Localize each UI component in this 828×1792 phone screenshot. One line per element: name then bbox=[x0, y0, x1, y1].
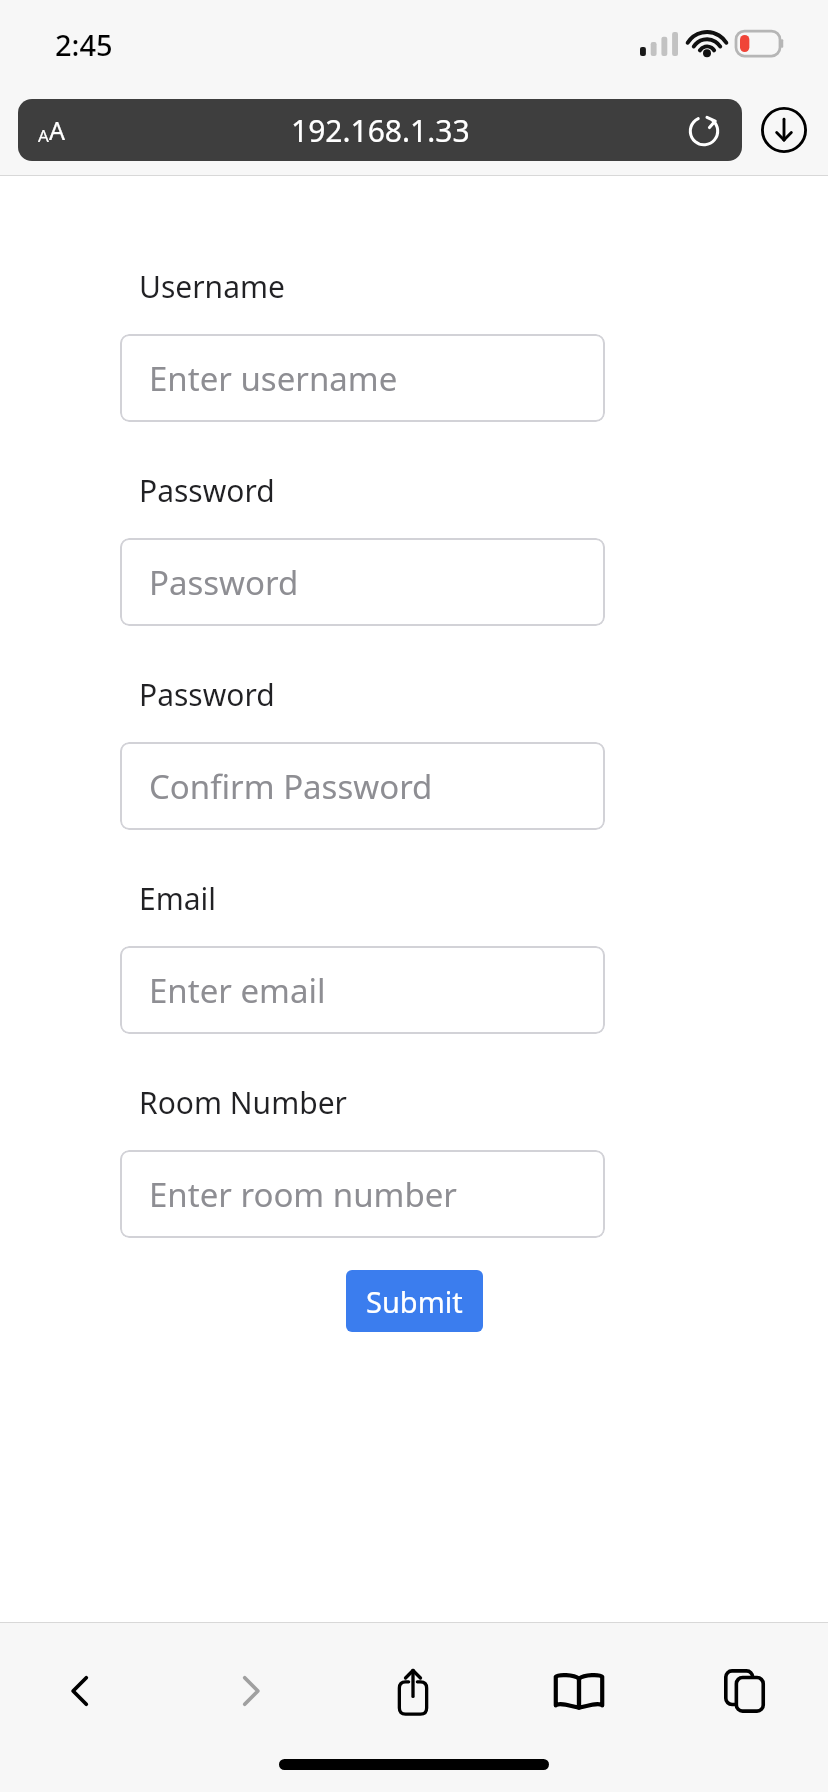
button[interactable]: Downloads bbox=[758, 104, 810, 156]
staticText: Password bbox=[139, 674, 275, 715]
button[interactable]: Enter username bbox=[120, 334, 605, 422]
staticText: A bbox=[49, 113, 65, 147]
button[interactable]: Tabs bbox=[662, 1644, 828, 1738]
button[interactable]: Confirm Password bbox=[120, 742, 605, 830]
button[interactable]: Enter room number bbox=[120, 1150, 605, 1238]
button[interactable]: Submit bbox=[346, 1270, 483, 1332]
staticText: Enter room number bbox=[149, 1172, 457, 1217]
button[interactable]: Share bbox=[330, 1644, 496, 1738]
button[interactable]: Text size options bbox=[18, 99, 742, 161]
button[interactable]: Forward bbox=[165, 1644, 330, 1738]
staticText: Username bbox=[139, 266, 285, 307]
staticText: Submit bbox=[366, 1282, 463, 1321]
staticText: Enter username bbox=[149, 356, 398, 401]
staticText: 192.168.1.33 bbox=[291, 110, 470, 151]
button[interactable]: Bookmarks bbox=[496, 1644, 662, 1738]
staticText: Room Number bbox=[139, 1082, 347, 1123]
button[interactable]: Back bbox=[0, 1644, 165, 1738]
staticText: 2:45 bbox=[55, 25, 113, 64]
staticText: Email bbox=[139, 878, 217, 919]
button[interactable]: Password bbox=[120, 538, 605, 626]
staticText: Enter email bbox=[149, 968, 326, 1013]
staticText: Confirm Password bbox=[149, 764, 433, 809]
staticText: Password bbox=[139, 470, 275, 511]
button[interactable]: Text size options bbox=[38, 113, 65, 147]
button[interactable]: Enter email bbox=[120, 946, 605, 1034]
staticText: A bbox=[38, 124, 49, 147]
staticText: Password bbox=[149, 560, 299, 605]
button[interactable]: Reload page bbox=[680, 106, 728, 154]
